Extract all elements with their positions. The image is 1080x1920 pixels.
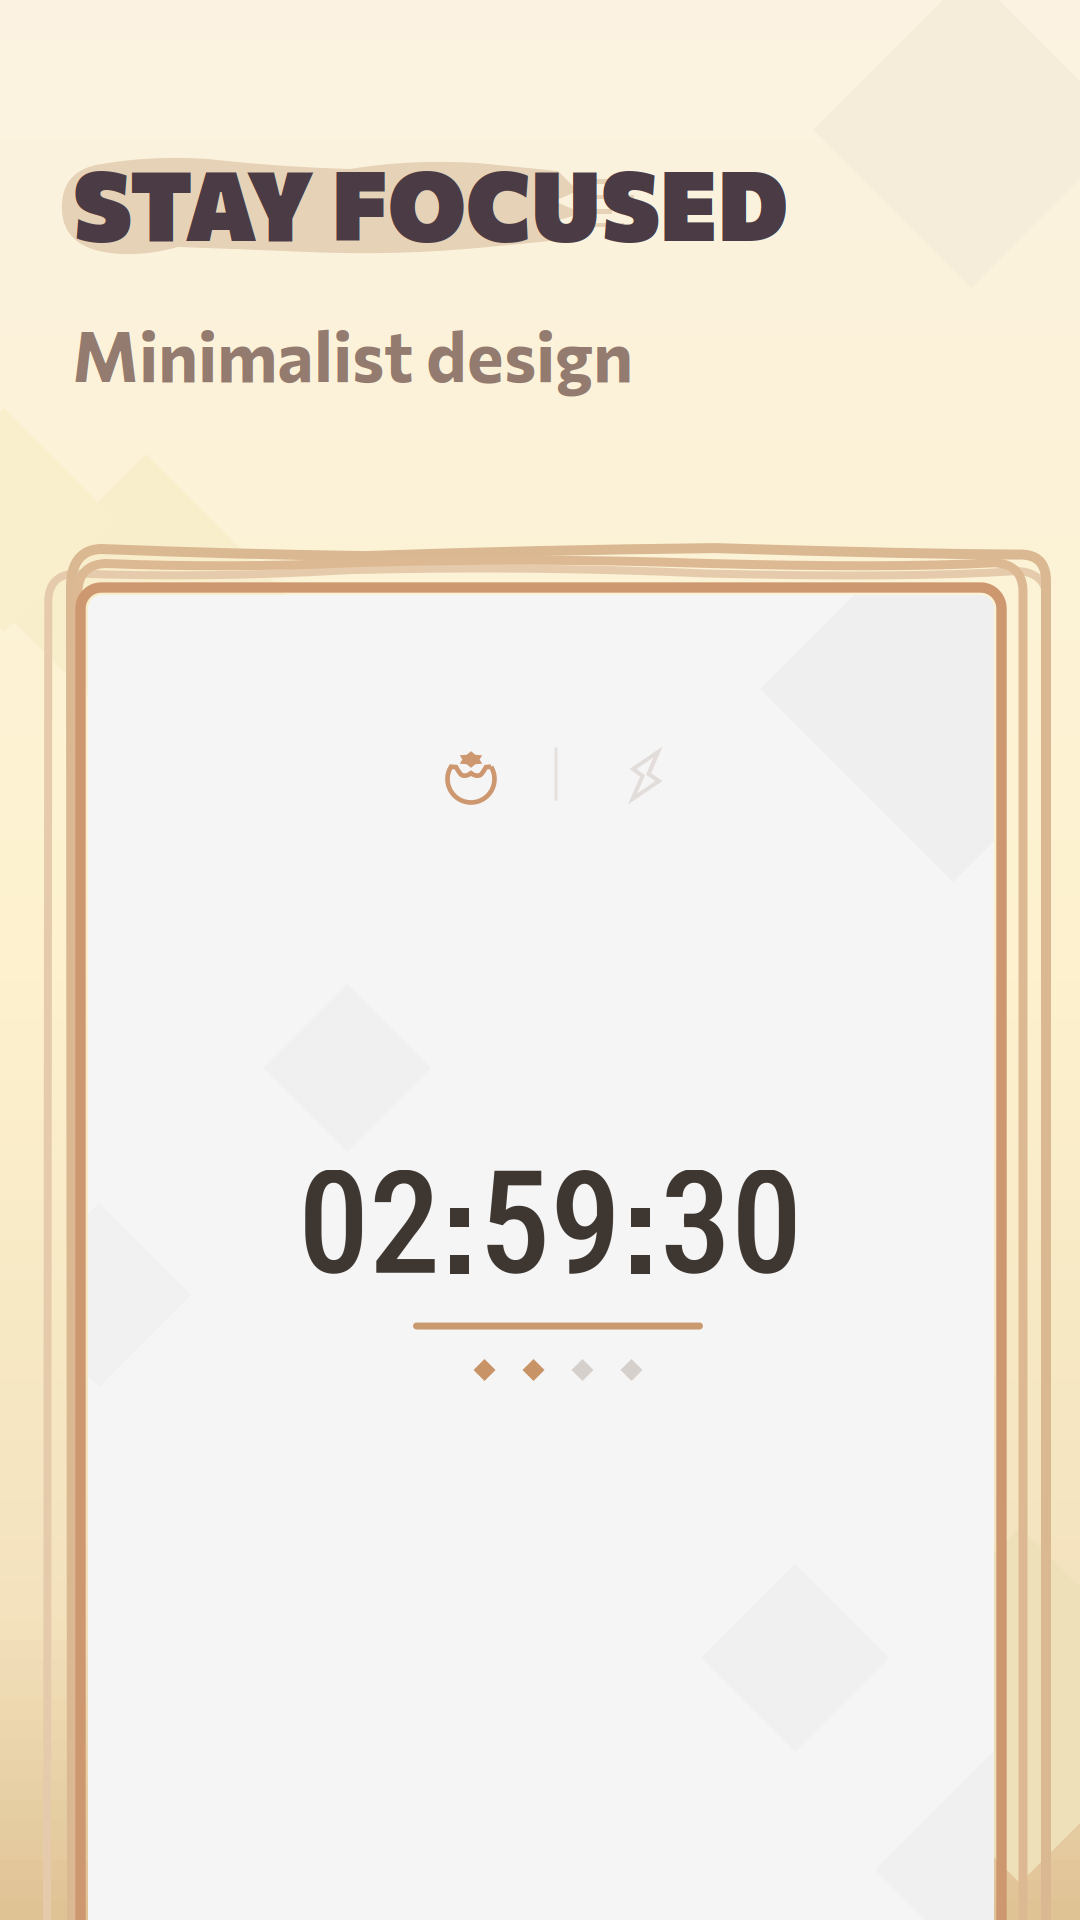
staticText: 02 [298, 1140, 440, 1308]
staticText: Minimalist design [72, 312, 633, 396]
staticText: 30 [660, 1140, 802, 1308]
staticText: STAY FOCUSED [73, 143, 788, 261]
staticText: 59 [479, 1140, 621, 1308]
